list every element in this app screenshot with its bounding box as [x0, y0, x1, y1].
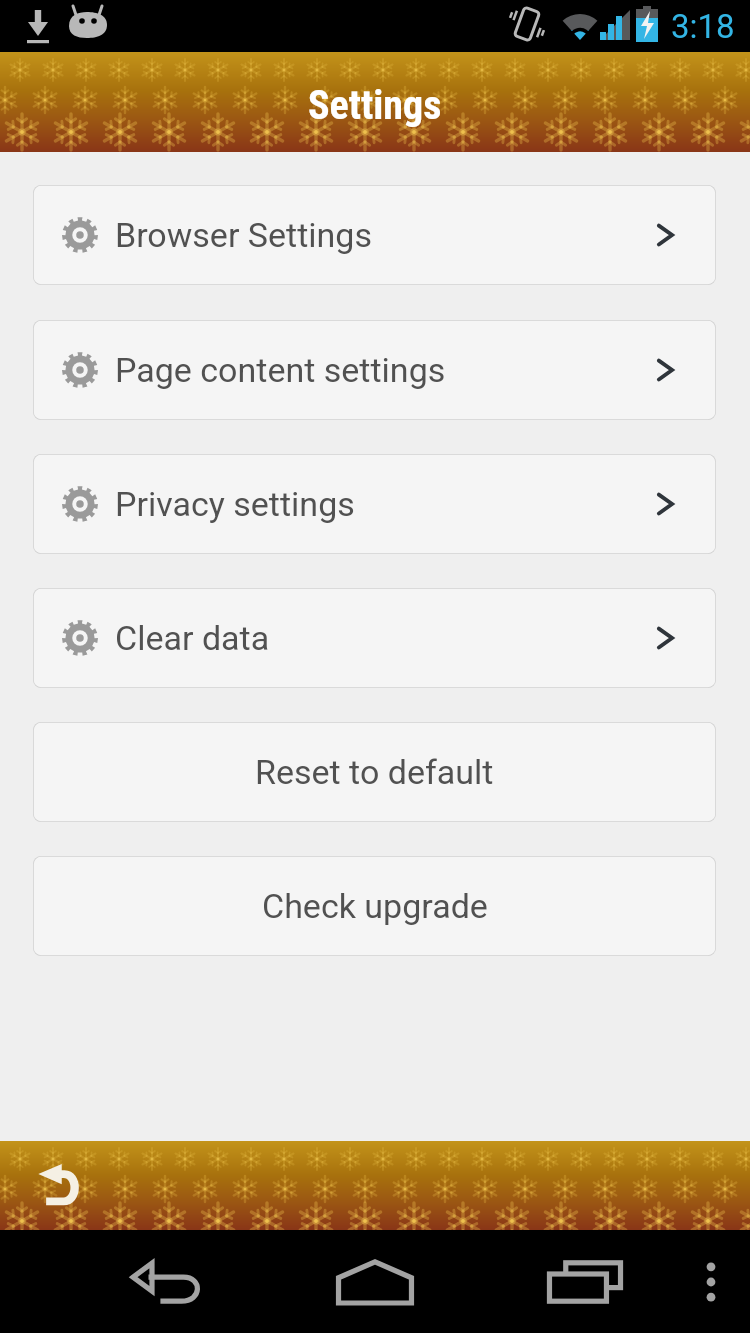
button[interactable]: Back: [96, 1230, 236, 1333]
staticText: Check upgrade: [262, 886, 488, 926]
staticText: Page content settings: [115, 350, 446, 390]
button[interactable]: More options: [672, 1230, 750, 1333]
button[interactable]: Privacy settings: [33, 454, 716, 554]
button[interactable]: Reset to default: [33, 722, 716, 822]
button[interactable]: Clear data: [33, 588, 716, 688]
staticText: Clear data: [115, 618, 270, 658]
button[interactable]: Home: [305, 1230, 445, 1333]
button[interactable]: Check upgrade: [33, 856, 716, 956]
button[interactable]: Browser Settings: [33, 185, 716, 285]
staticText: Reset to default: [255, 752, 494, 792]
staticText: Browser Settings: [115, 215, 372, 255]
staticText: 3:18: [671, 7, 735, 46]
button[interactable]: Page content settings: [33, 320, 716, 420]
button[interactable]: Back: [36, 1164, 82, 1208]
staticText: Settings: [308, 82, 442, 129]
button[interactable]: Recent apps: [515, 1230, 655, 1333]
staticText: Privacy settings: [115, 484, 355, 524]
